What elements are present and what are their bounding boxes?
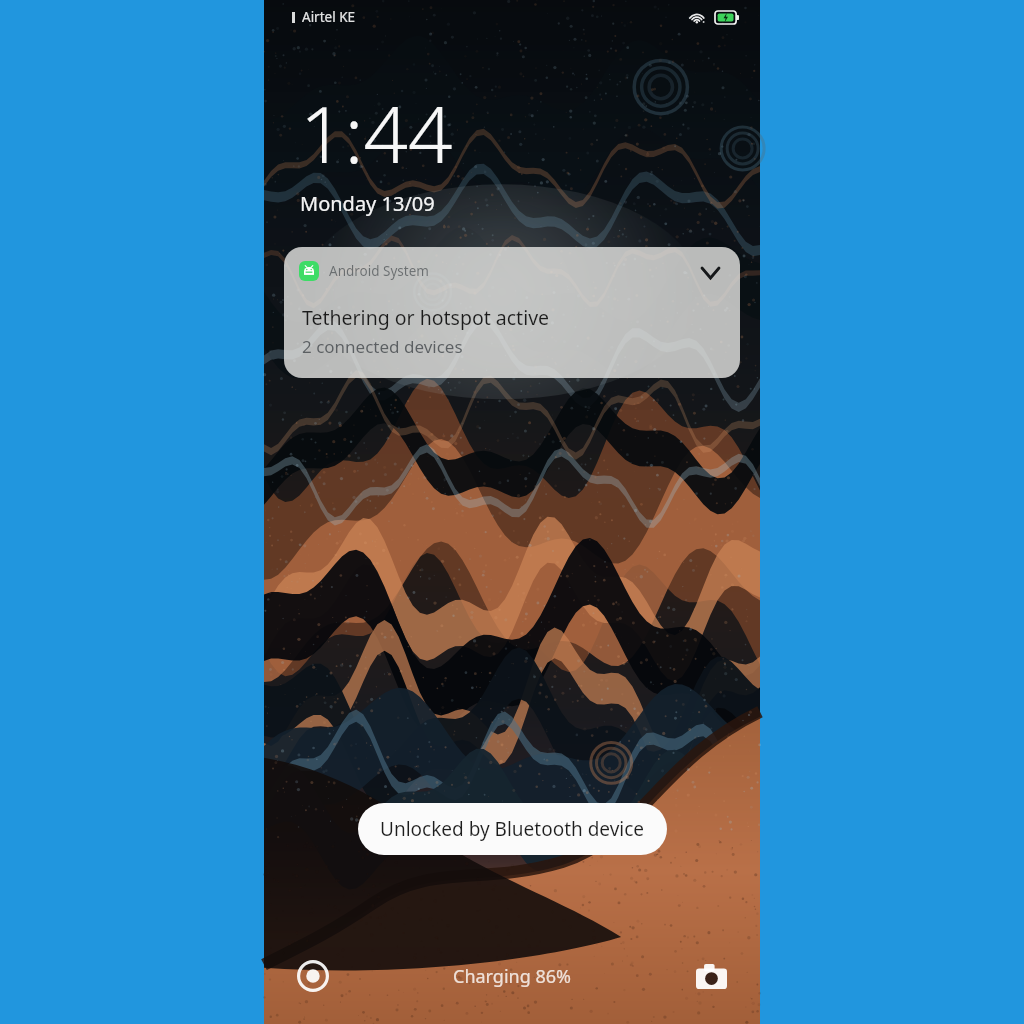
staticText: 2 connected devices: [302, 335, 463, 358]
staticText: 1:44: [300, 80, 453, 186]
staticText: Tethering or hotspot active: [302, 304, 550, 331]
button[interactable]: Android System: [284, 247, 740, 378]
button[interactable]: Unlocked by Bluetooth device: [358, 803, 667, 855]
button[interactable]: Camera: [688, 953, 734, 999]
staticText: Monday 13/09: [300, 190, 435, 217]
staticText: Airtel KE: [302, 8, 356, 26]
button[interactable]: Expand notification: [690, 253, 730, 293]
staticText: Charging 86%: [453, 964, 571, 989]
button[interactable]: Voice assistant: [290, 953, 336, 999]
staticText: Unlocked by Bluetooth device: [380, 816, 645, 842]
staticText: Android System: [329, 262, 429, 280]
